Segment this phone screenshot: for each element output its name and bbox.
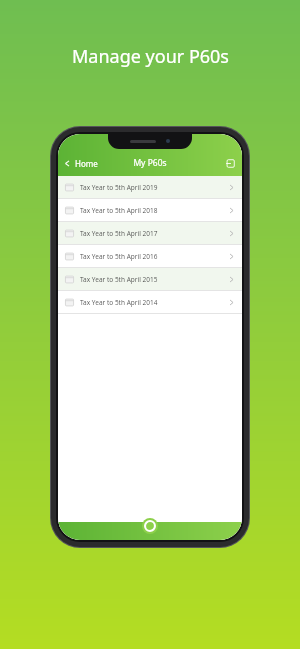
staticText: Tax Year to 5th April 2019 xyxy=(80,183,228,192)
button[interactable]: Tax Year to 5th April 2017 xyxy=(58,222,242,244)
button[interactable]: Tax Year to 5th April 2016 xyxy=(58,245,242,267)
staticText: Tax Year to 5th April 2015 xyxy=(80,275,228,284)
staticText: Tax Year to 5th April 2017 xyxy=(80,229,228,238)
staticText: Tax Year to 5th April 2018 xyxy=(80,206,228,215)
button[interactable]: Log out xyxy=(219,154,242,173)
button[interactable]: Tax Year to 5th April 2019 xyxy=(58,176,242,198)
staticText: My P60s xyxy=(133,157,167,169)
button[interactable]: Tax Year to 5th April 2014 xyxy=(58,291,242,313)
button[interactable]: Home xyxy=(58,154,104,173)
staticText: Home xyxy=(75,158,98,169)
button[interactable]: Tax Year to 5th April 2015 xyxy=(58,268,242,290)
staticText: Tax Year to 5th April 2014 xyxy=(80,298,228,307)
button[interactable]: Home xyxy=(142,518,158,534)
button[interactable]: Tax Year to 5th April 2018 xyxy=(58,199,242,221)
staticText: Manage your P60s xyxy=(72,44,229,69)
staticText: Tax Year to 5th April 2016 xyxy=(80,252,228,261)
